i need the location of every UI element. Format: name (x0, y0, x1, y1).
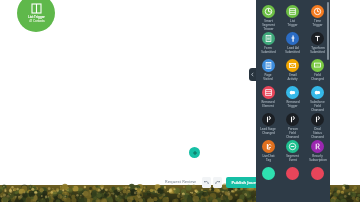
staticText: Submitted (285, 50, 300, 54)
staticText: 41 Contacts (29, 19, 45, 23)
staticText: Trigger (263, 27, 274, 30)
button[interactable]: Typeform (305, 30, 330, 57)
staticText: Email (289, 73, 297, 77)
button[interactable]: Lead Ad (280, 30, 305, 57)
button[interactable]: Undo (202, 177, 211, 188)
staticText: Publish Journey (231, 180, 263, 186)
button[interactable]: Time (305, 3, 330, 30)
button[interactable]: Redo (213, 177, 222, 188)
staticText: Lead Stage (260, 127, 276, 131)
staticText: Status (313, 131, 322, 135)
button[interactable]: Smart (256, 3, 280, 30)
button[interactable]: Field (305, 57, 330, 84)
staticText: Changed (286, 135, 299, 138)
staticText: LiveChat (262, 154, 275, 158)
button[interactable]: Segment (280, 138, 305, 165)
staticText: Lead Ad (287, 46, 299, 50)
staticText: Changed (262, 131, 275, 135)
button[interactable]: Email (280, 57, 305, 84)
staticText: Trigger (287, 104, 298, 108)
button[interactable]: Collapse panel (249, 68, 256, 81)
staticText: Segment (286, 154, 299, 158)
staticText: Removed (261, 100, 275, 104)
staticText: Field (314, 104, 321, 108)
button[interactable]: List Trigger (17, 0, 55, 32)
staticText: Page (264, 73, 272, 77)
button[interactable]: Removed (256, 84, 280, 111)
button[interactable]: Request Review (162, 179, 199, 185)
staticText: Changed (311, 135, 324, 138)
button[interactable]: Publish Journey (226, 177, 268, 188)
staticText: Visited (263, 77, 273, 81)
staticText: Form (264, 46, 272, 50)
staticText: Field (314, 73, 321, 77)
staticText: Changed (311, 77, 324, 81)
staticText: Subscription (309, 158, 327, 162)
button[interactable]: LiveChat (256, 138, 280, 165)
button[interactable]: List (280, 3, 305, 30)
button[interactable]: Form (256, 30, 280, 57)
button[interactable]: Removed (280, 84, 305, 111)
staticText: Segment (262, 23, 275, 27)
staticText: Trigger (287, 23, 298, 27)
staticText: Removed (286, 100, 300, 104)
staticText: List Trigger (28, 15, 45, 19)
staticText: Person (288, 127, 298, 131)
button[interactable]: Person (280, 111, 305, 138)
button[interactable]: Deal (305, 111, 330, 138)
staticText: Trigger (312, 23, 323, 27)
staticText: Request Review (165, 179, 196, 185)
staticText: List (290, 19, 295, 23)
staticText: Element (262, 104, 274, 108)
staticText: Field (289, 131, 296, 135)
staticText: Recurly (312, 154, 323, 158)
button[interactable]: Page (256, 57, 280, 84)
staticText: Deal (314, 127, 321, 131)
staticText: Typeform (311, 46, 325, 50)
staticText: Submitted (261, 50, 276, 54)
button[interactable] (280, 165, 305, 192)
button[interactable]: Lead Stage (256, 111, 280, 138)
staticText: Activity (287, 77, 298, 81)
staticText: Changed (311, 108, 324, 111)
staticText: Tag (266, 158, 271, 162)
staticText: Event (289, 158, 297, 162)
button[interactable] (256, 165, 280, 192)
staticText: Smart (264, 19, 273, 23)
button[interactable]: Recurly (305, 138, 330, 165)
button[interactable]: Add step (189, 147, 200, 158)
staticText: Submitted (310, 50, 325, 54)
staticText: Time (314, 19, 321, 23)
staticText: Salesforce (310, 100, 325, 104)
button[interactable]: Salesforce (305, 84, 330, 111)
button[interactable] (305, 165, 330, 192)
